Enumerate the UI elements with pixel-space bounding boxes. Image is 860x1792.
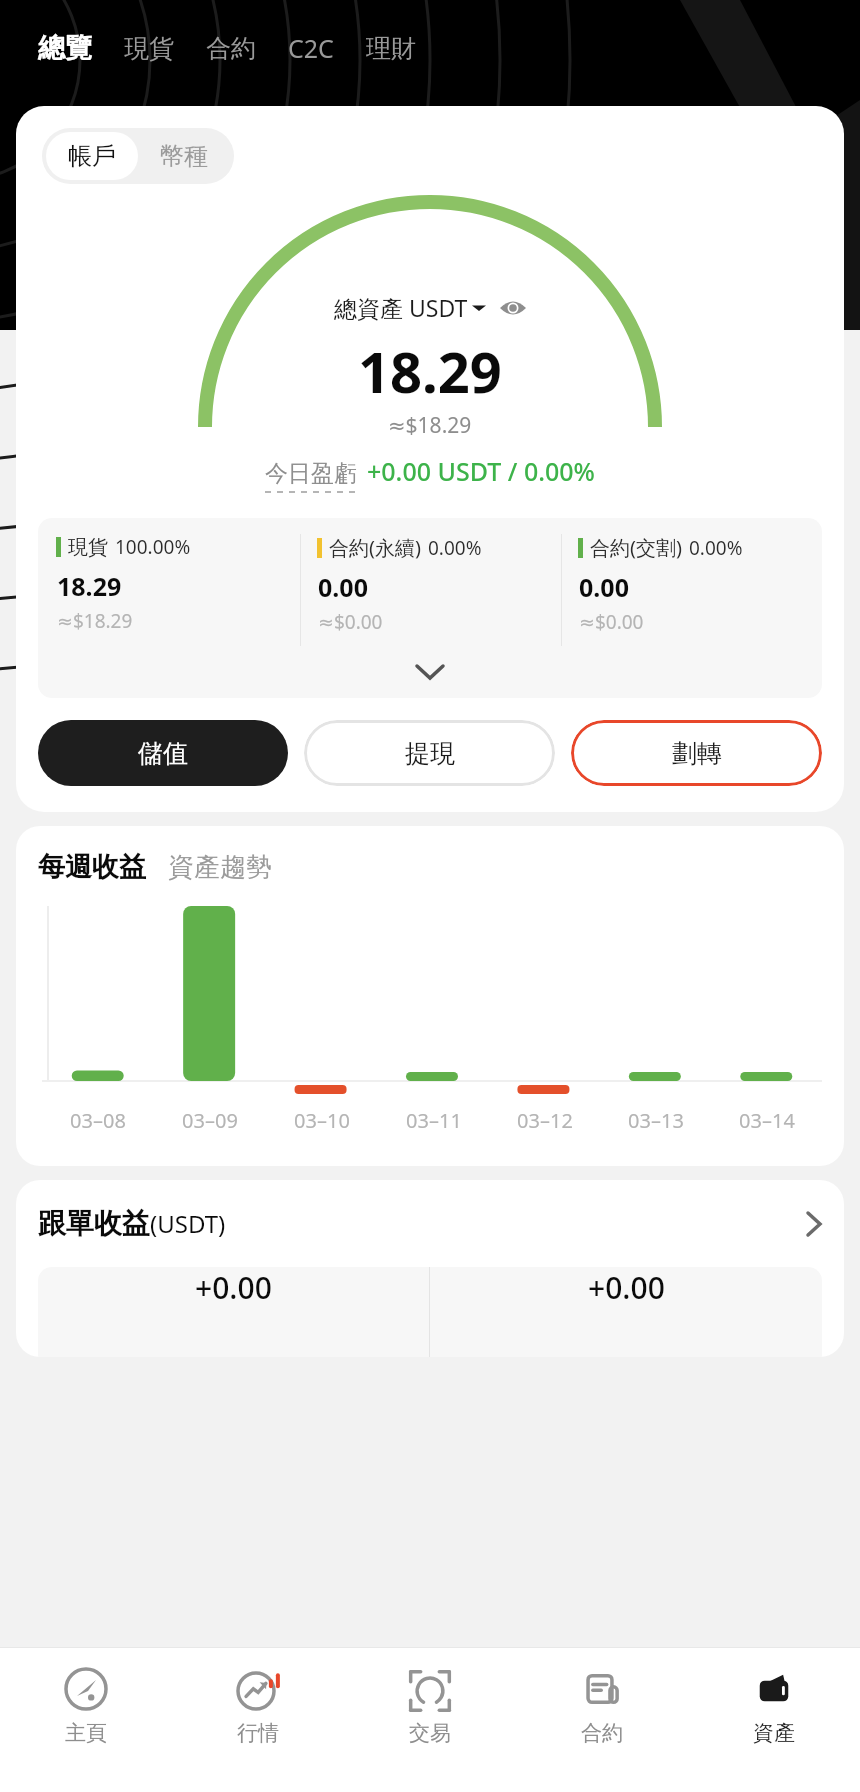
button[interactable]: 合約 (516, 1648, 688, 1792)
staticText: 100.00% (115, 534, 191, 560)
staticText: 03–09 (182, 1107, 238, 1134)
button[interactable]: 帳戶 (46, 132, 138, 180)
staticText: 18.29 (358, 333, 502, 409)
staticText: C2C (288, 31, 334, 65)
staticText: +0.00 (195, 1267, 272, 1308)
staticText: 合約 (206, 33, 256, 64)
staticText: 跟單收益 (38, 1206, 150, 1241)
button[interactable]: 資產趨勢 (168, 851, 272, 884)
staticText: 行情 (237, 1720, 279, 1746)
staticText: ≈$0.00 (579, 609, 644, 635)
button[interactable]: 現貨 (112, 25, 186, 72)
button[interactable]: Expand (38, 646, 822, 698)
staticText: 帳戶 (68, 141, 116, 171)
button[interactable]: 每週收益 (38, 850, 146, 884)
staticText: 合約 (581, 1720, 623, 1746)
button[interactable]: Hide balance (500, 295, 526, 321)
staticText: 現貨 (124, 33, 174, 64)
button[interactable]: 幣種 (138, 132, 230, 180)
staticText: 合約(永續) (329, 534, 421, 561)
staticText: ≈$18.29 (57, 608, 133, 634)
staticText: 03–14 (739, 1107, 795, 1134)
staticText: +0.00 (588, 1267, 665, 1308)
staticText: 0.00 (318, 570, 368, 604)
button[interactable]: 主頁 (0, 1648, 172, 1792)
staticText: 提現 (405, 738, 455, 769)
staticText: 03–11 (406, 1107, 462, 1134)
staticText: 理財 (366, 33, 416, 64)
staticText: 03–10 (294, 1107, 350, 1134)
button[interactable]: 行情 (172, 1648, 344, 1792)
staticText: 合約(交割) (590, 534, 682, 561)
staticText: 資產趨勢 (168, 851, 272, 884)
staticText: 今日盈虧 (265, 459, 357, 488)
staticText: 03–13 (628, 1107, 684, 1134)
staticText: +0.00 USDT / 0.00% (367, 454, 595, 488)
button[interactable]: 總覽 (26, 23, 104, 73)
button[interactable]: 跟單收益 (16, 1206, 844, 1241)
staticText: 03–12 (517, 1107, 573, 1134)
staticText: 幣種 (160, 141, 208, 171)
staticText: 0.00% (428, 535, 482, 561)
staticText: ≈$18.29 (388, 411, 472, 440)
staticText: ≈$0.00 (318, 609, 383, 635)
staticText: 交易 (409, 1720, 451, 1746)
button[interactable]: 交易 (344, 1648, 516, 1792)
staticText: 現貨 (68, 535, 108, 560)
staticText: (USDT) (150, 1207, 226, 1240)
staticText: 總資產 USDT (334, 292, 468, 323)
button[interactable]: 理財 (354, 25, 428, 72)
staticText: 18.29 (57, 569, 122, 603)
staticText: 主頁 (65, 1720, 107, 1746)
staticText: 0.00% (689, 535, 743, 561)
staticText: 0.00 (579, 570, 629, 604)
button[interactable]: 資產 (688, 1648, 860, 1792)
staticText: 03–08 (70, 1107, 126, 1134)
button[interactable]: 合約 (194, 25, 268, 72)
button[interactable]: C2C (276, 23, 346, 73)
staticText: 總覽 (38, 31, 92, 65)
button[interactable]: 劃轉 (571, 720, 822, 786)
staticText: 每週收益 (38, 850, 146, 884)
staticText: 儲值 (138, 738, 188, 769)
button[interactable]: 提現 (304, 720, 555, 786)
staticText: 劃轉 (672, 738, 722, 769)
staticText: 資產 (753, 1720, 795, 1746)
button[interactable]: 儲值 (38, 720, 288, 786)
